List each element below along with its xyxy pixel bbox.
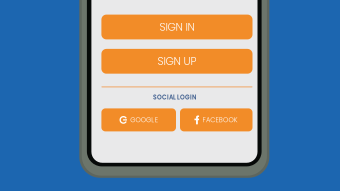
staticText: SIGN IN bbox=[159, 19, 194, 34]
button[interactable]: SIGN IN bbox=[101, 15, 252, 39]
button[interactable]: GOOGLE bbox=[101, 108, 176, 131]
staticText: SIGN UP bbox=[157, 54, 196, 69]
staticText: SOCIAL LOGIN bbox=[153, 93, 196, 101]
button[interactable]: SIGN UP bbox=[101, 49, 252, 74]
button[interactable]: FACEBOOK bbox=[180, 108, 252, 131]
staticText: GOOGLE bbox=[130, 115, 158, 124]
staticText: FACEBOOK bbox=[203, 115, 238, 124]
